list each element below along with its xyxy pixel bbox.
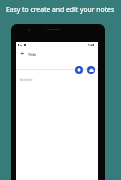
button[interactable]: Choose colour — [75, 66, 83, 74]
staticText: Easy to create and edit your notes — [6, 5, 115, 14]
staticText: Note here — [20, 78, 33, 82]
button[interactable]: Back — [18, 49, 26, 57]
button[interactable]: Save note — [87, 66, 95, 74]
button[interactable]: Title — [28, 52, 37, 57]
